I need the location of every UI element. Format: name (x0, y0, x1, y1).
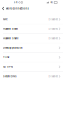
staticText: Disabled (48, 37, 57, 40)
staticText: More connections (5, 7, 28, 10)
button[interactable]: NFC (0, 15, 63, 24)
button[interactable]: Secure DNS (0, 72, 63, 81)
staticText: Disabled (48, 75, 57, 78)
staticText: Disabled (48, 27, 57, 30)
button[interactable]: 5G VPN (0, 62, 63, 71)
button[interactable]: Desktop projection (0, 43, 63, 52)
staticText: 9:41 (14, 1, 18, 4)
button[interactable]: Back (0, 5, 5, 12)
staticText: Huawei Share (3, 37, 18, 40)
staticText: NFC (3, 18, 8, 21)
staticText: 4G (50, 1, 53, 4)
staticText: 5G VPN (3, 65, 13, 68)
button[interactable]: Huawei Beam (0, 24, 63, 33)
staticText: Disabled (48, 18, 57, 21)
button[interactable]: Tlink (0, 53, 63, 62)
staticText: Desktop projection (3, 46, 22, 49)
staticText: Tlink (3, 56, 9, 59)
button[interactable]: Huawei Share (0, 34, 63, 43)
staticText: Huawei Beam (3, 27, 18, 30)
staticText: Secure DNS (3, 75, 17, 78)
